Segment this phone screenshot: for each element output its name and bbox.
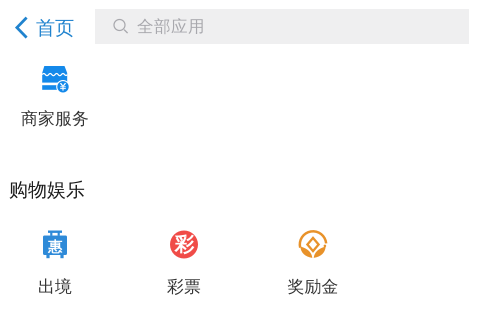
staticText: 奖励金 [287,276,338,297]
staticText: 首页 [36,16,74,40]
button[interactable]: 彩 [119,229,248,301]
button[interactable]: 商家服务 [0,64,119,136]
staticText: 彩 [174,232,193,257]
staticText: 彩票 [167,276,201,297]
staticText: 购物娱乐 [9,178,85,202]
button[interactable]: 惠 [0,229,119,301]
staticText: 出境 [38,276,72,297]
staticText: 全部应用 [137,16,205,37]
button[interactable]: 全部应用 [95,9,469,44]
button[interactable]: 奖励金 [248,229,377,301]
staticText: 惠 [48,238,62,256]
staticText: 商家服务 [21,108,89,129]
button[interactable]: 首页 [11,12,78,44]
